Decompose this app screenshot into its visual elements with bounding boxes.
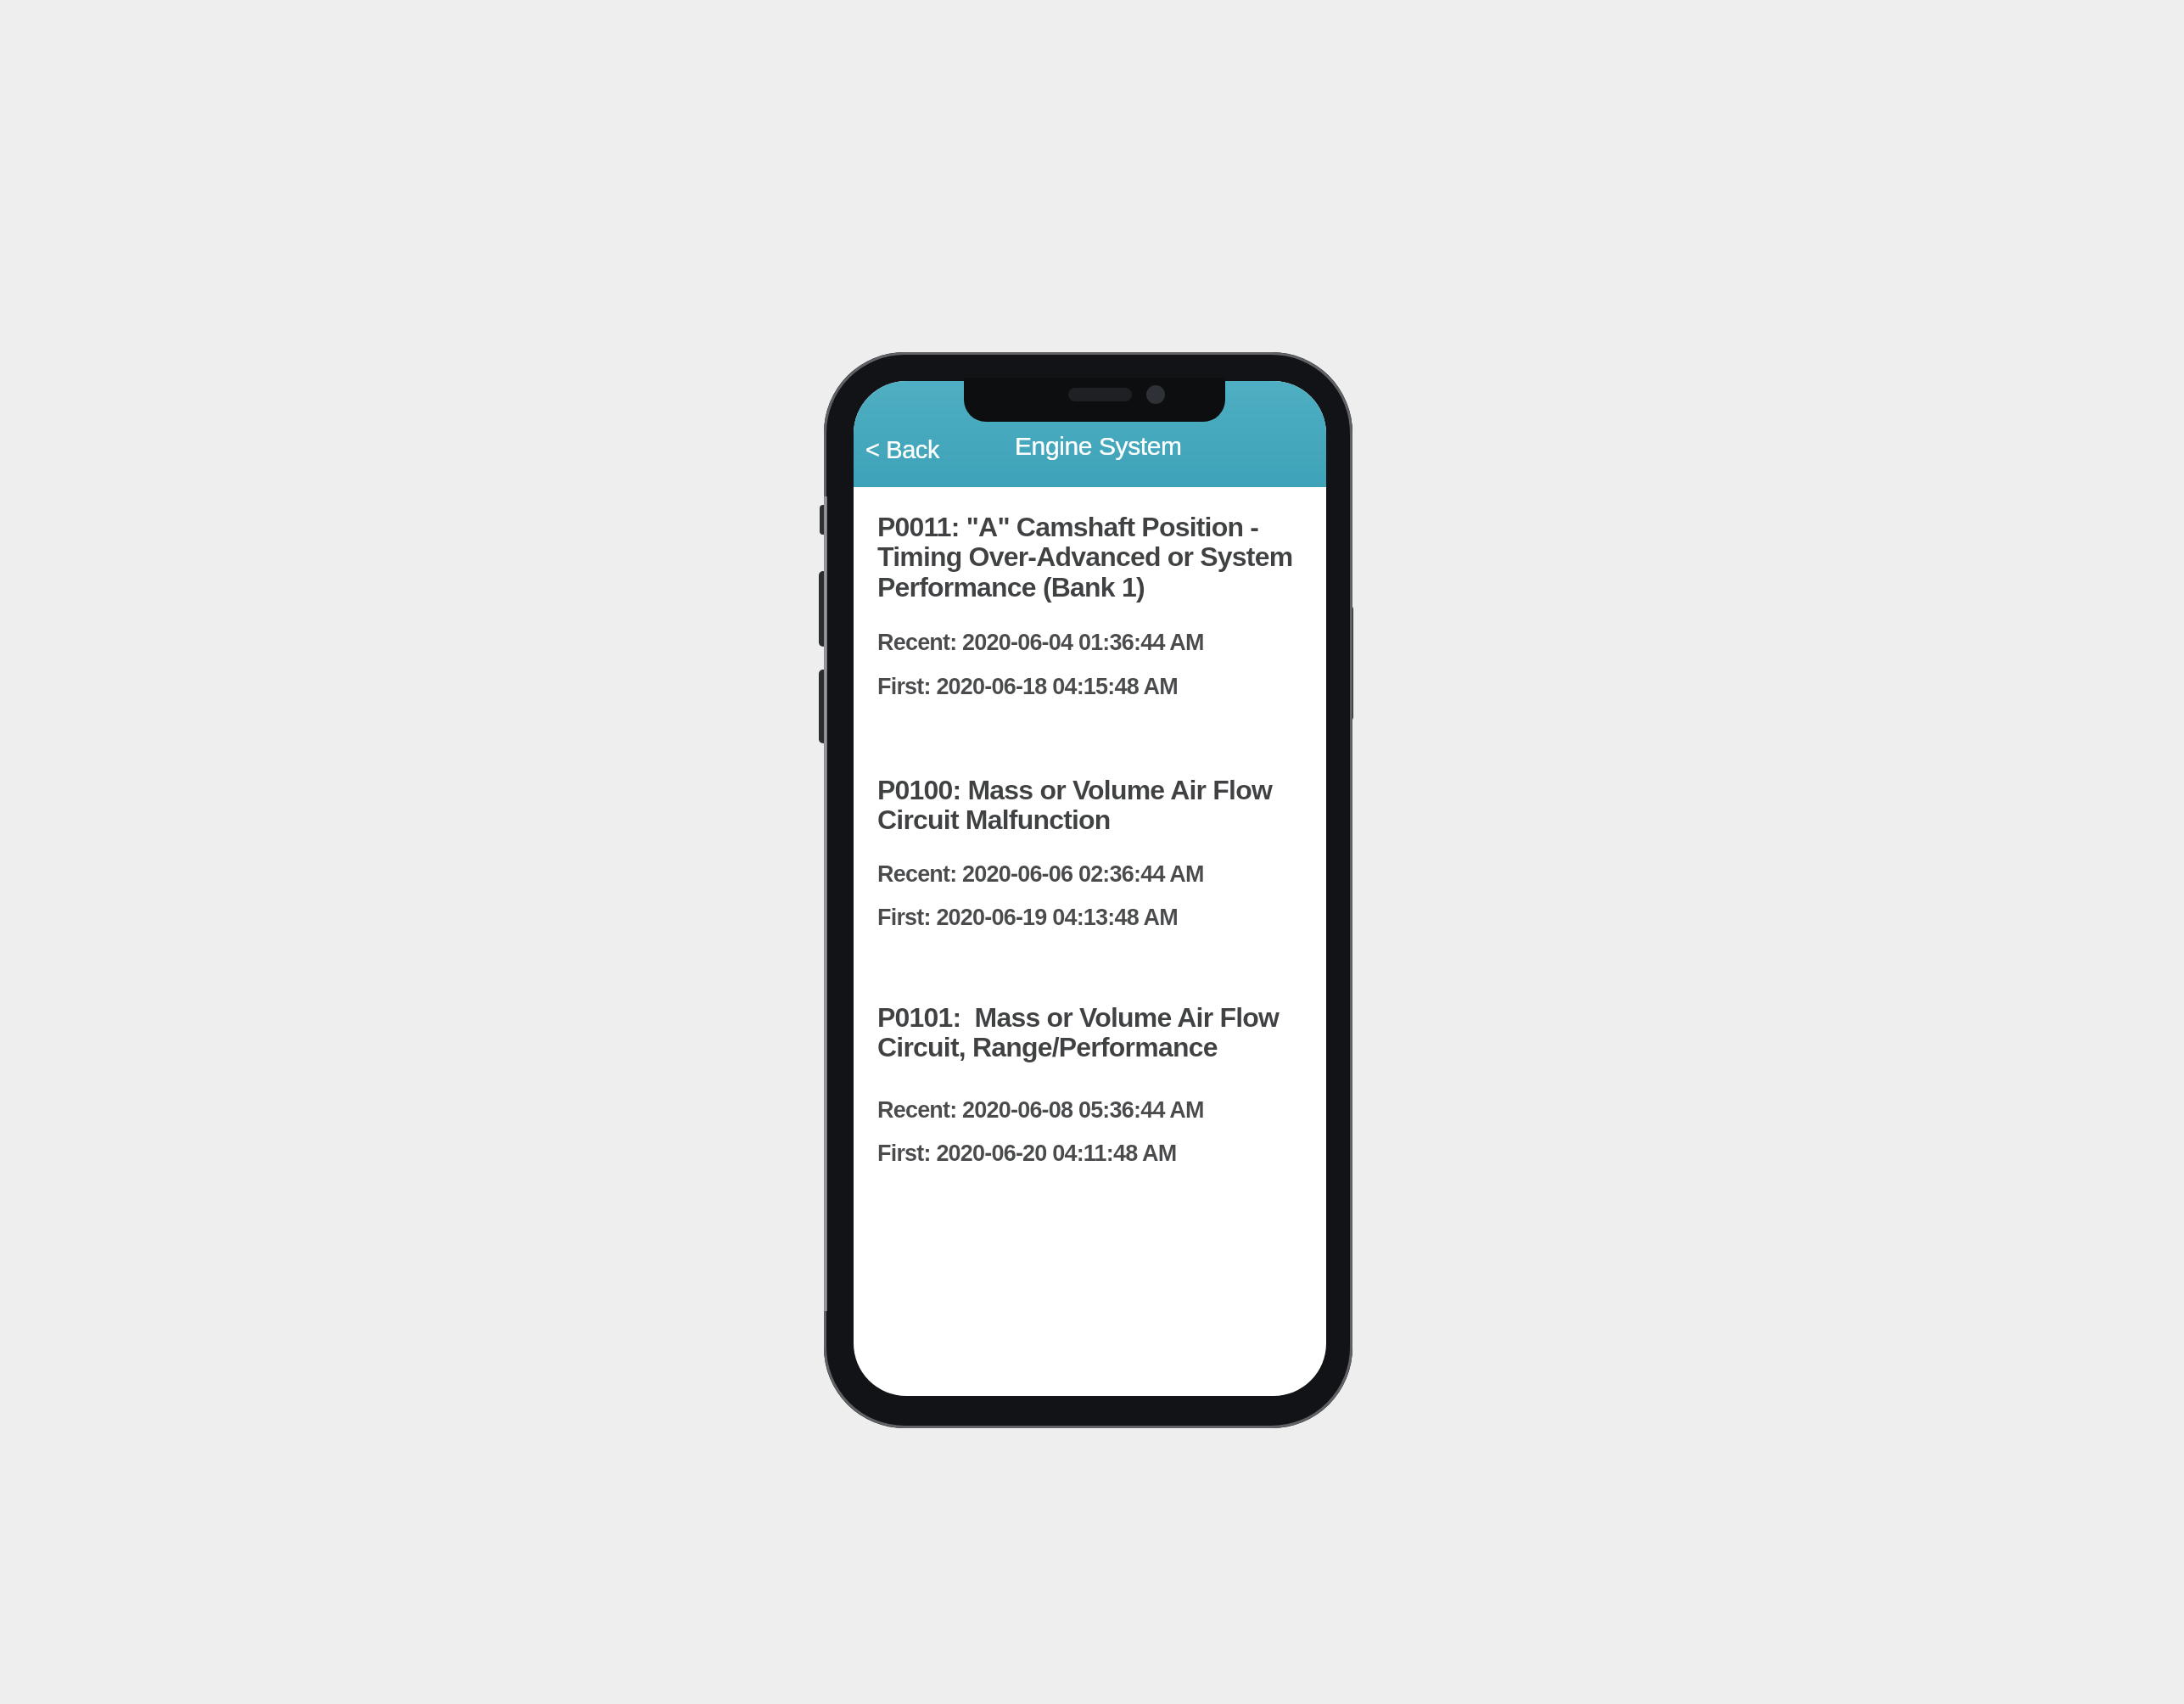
- staticText: P0101: Mass or Volume Air Flow Circuit, …: [877, 1002, 1280, 1062]
- button[interactable]: < Back: [855, 425, 954, 475]
- staticText: Recent: 2020-06-04 01:36:44 AM: [877, 630, 1204, 655]
- staticText: P0011: "A" Camshaft Position - Timing Ov…: [877, 512, 1293, 603]
- staticText: P0100: Mass or Volume Air Flow Circuit M…: [877, 775, 1273, 835]
- staticText: First: 2020-06-20 04:11:48 AM: [877, 1141, 1177, 1166]
- staticText: First: 2020-06-19 04:13:48 AM: [877, 905, 1178, 930]
- staticText: Recent: 2020-06-08 05:36:44 AM: [877, 1097, 1204, 1123]
- staticText: Recent: 2020-06-06 02:36:44 AM: [877, 861, 1204, 887]
- staticText: First: 2020-06-18 04:15:48 AM: [877, 674, 1178, 699]
- staticText: Engine System: [1015, 432, 1182, 461]
- staticText: < Back: [865, 436, 940, 463]
